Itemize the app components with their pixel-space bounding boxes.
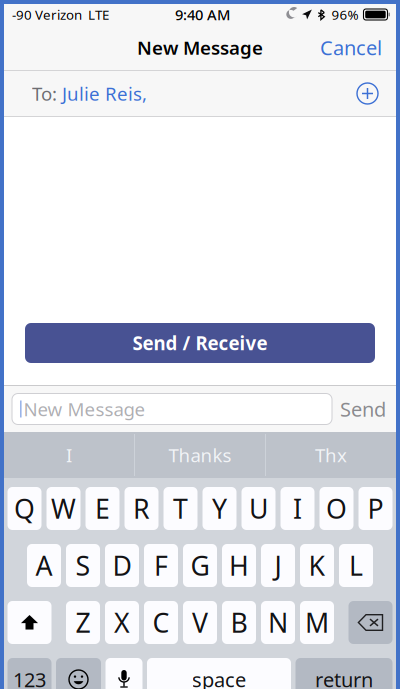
button[interactable]: G xyxy=(183,544,217,587)
button[interactable]: C xyxy=(144,601,178,644)
staticText: return xyxy=(315,666,373,689)
staticText: H xyxy=(229,548,249,583)
staticText: C xyxy=(152,605,169,640)
button[interactable]: Q xyxy=(7,487,41,530)
staticText: T xyxy=(173,491,188,526)
staticText: F xyxy=(154,548,168,583)
staticText: 96% xyxy=(331,6,358,23)
button[interactable]: Thanks xyxy=(135,432,265,478)
staticText: L xyxy=(349,548,363,583)
button[interactable]: J xyxy=(261,544,295,587)
staticText: W xyxy=(51,491,76,526)
button[interactable]: Z xyxy=(66,601,100,644)
staticText: To: xyxy=(32,81,57,106)
button[interactable]: N xyxy=(261,601,295,644)
button[interactable]: M xyxy=(300,601,334,644)
staticText: Julie Reis, xyxy=(57,81,147,106)
button[interactable]: Send xyxy=(340,396,386,422)
staticText: K xyxy=(308,548,325,583)
button[interactable]: Y xyxy=(202,487,236,530)
button[interactable]: U xyxy=(241,487,275,530)
button[interactable]: I xyxy=(4,432,134,478)
button[interactable]: I xyxy=(280,487,314,530)
staticText: P xyxy=(367,491,383,526)
button[interactable]: V xyxy=(183,601,217,644)
staticText: Send xyxy=(340,396,386,422)
staticText: I xyxy=(66,443,72,467)
button[interactable]: R xyxy=(124,487,158,530)
button[interactable]: T xyxy=(163,487,197,530)
button[interactable]: Thx xyxy=(266,432,396,478)
button[interactable]: A xyxy=(27,544,61,587)
staticText: Z xyxy=(75,605,90,640)
staticText: E xyxy=(95,491,110,526)
staticText: Cancel xyxy=(320,34,382,61)
staticText: I xyxy=(293,491,302,526)
staticText: LTE xyxy=(82,6,109,23)
staticText: 123 xyxy=(13,666,46,689)
staticText: O xyxy=(326,491,347,526)
staticText: Y xyxy=(212,491,227,526)
button[interactable]: 123 xyxy=(7,658,51,689)
staticText: New Message xyxy=(24,397,146,421)
staticText: space xyxy=(192,666,246,689)
staticText: A xyxy=(35,548,52,583)
button[interactable]: L xyxy=(339,544,373,587)
button[interactable]: B xyxy=(222,601,256,644)
staticText: R xyxy=(133,491,150,526)
staticText: New Message xyxy=(137,35,263,60)
button[interactable]: Add Contact xyxy=(357,83,378,104)
staticText: Send / Receive xyxy=(132,331,267,355)
button[interactable]: D xyxy=(105,544,139,587)
staticText: D xyxy=(112,548,131,583)
staticText: Thx xyxy=(315,443,347,467)
button[interactable]: P xyxy=(358,487,392,530)
button[interactable]: F xyxy=(144,544,178,587)
button[interactable]: Shift xyxy=(7,601,51,644)
button[interactable]: Cancel xyxy=(320,34,382,61)
staticText: V xyxy=(192,605,208,640)
button[interactable]: X xyxy=(105,601,139,644)
button[interactable]: Delete xyxy=(348,601,392,644)
staticText: Q xyxy=(14,491,35,526)
staticText: M xyxy=(305,605,329,640)
button[interactable]: Emoji xyxy=(56,658,101,689)
staticText: S xyxy=(75,548,90,583)
button[interactable]: space xyxy=(147,658,291,689)
staticText: N xyxy=(268,605,288,640)
staticText: G xyxy=(190,548,209,583)
staticText: Thanks xyxy=(168,443,231,467)
button[interactable]: K xyxy=(300,544,334,587)
button[interactable]: H xyxy=(222,544,256,587)
button[interactable]: O xyxy=(319,487,353,530)
staticText: U xyxy=(249,491,268,526)
staticText: B xyxy=(230,605,247,640)
staticText: J xyxy=(274,548,281,583)
button[interactable]: E xyxy=(85,487,119,530)
staticText: 9:40 AM xyxy=(175,5,230,24)
button[interactable]: return xyxy=(295,658,392,689)
staticText: -90 Verizon xyxy=(12,6,82,23)
button[interactable]: S xyxy=(66,544,100,587)
button[interactable]: Send / Receive xyxy=(25,323,375,363)
button[interactable]: W xyxy=(46,487,80,530)
staticText: X xyxy=(114,605,130,640)
button[interactable]: Dictate xyxy=(105,658,142,689)
